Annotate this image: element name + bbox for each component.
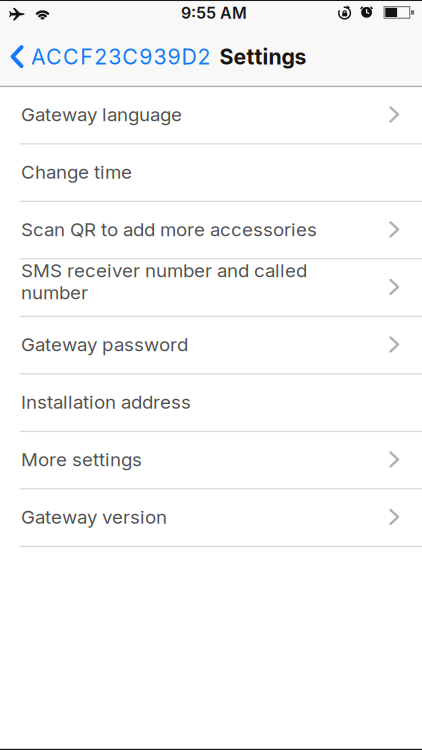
staticText: Gateway language bbox=[21, 103, 182, 125]
staticText: 9:55 AM bbox=[181, 3, 247, 22]
staticText: SMS receiver number and called bbox=[21, 259, 307, 281]
staticText: number bbox=[21, 281, 88, 303]
staticText: More settings bbox=[21, 448, 142, 470]
button[interactable]: Back bbox=[0, 44, 210, 69]
button[interactable]: Gateway password bbox=[0, 317, 422, 375]
button[interactable]: Gateway version bbox=[0, 490, 422, 547]
staticText: Installation address bbox=[21, 391, 191, 413]
staticText: ACCF23C939D2 bbox=[31, 44, 210, 69]
button[interactable]: Scan QR to add more accessories bbox=[0, 202, 422, 260]
staticText: Scan QR to add more accessories bbox=[21, 218, 317, 240]
button[interactable]: More settings bbox=[0, 432, 422, 490]
staticText: Gateway version bbox=[21, 506, 167, 528]
staticText: Change time bbox=[21, 161, 132, 183]
button[interactable]: Installation address bbox=[0, 375, 422, 432]
staticText: Gateway password bbox=[21, 333, 188, 355]
button[interactable]: SMS receiver number and called bbox=[0, 260, 422, 317]
button[interactable]: Gateway language bbox=[0, 87, 422, 145]
staticText: Settings bbox=[219, 44, 306, 69]
button[interactable]: Change time bbox=[0, 145, 422, 202]
